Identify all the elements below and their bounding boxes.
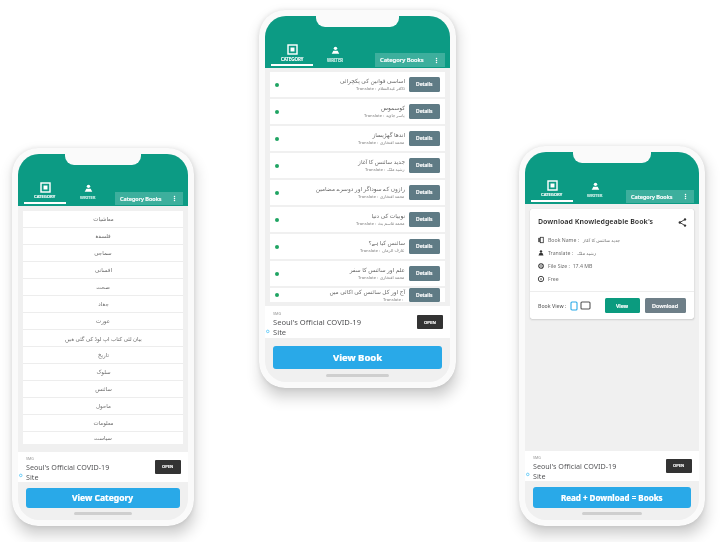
staticText: Translate : bbox=[383, 297, 405, 302]
button[interactable]: معاشیات bbox=[23, 211, 183, 227]
staticText: OPEN bbox=[673, 463, 685, 469]
button[interactable]: رازوں کے سوداگر اور دوسرے مضامین bbox=[270, 180, 445, 205]
button[interactable]: سیاست bbox=[23, 432, 183, 444]
staticText: View bbox=[616, 302, 629, 309]
button[interactable]: Landscape view bbox=[581, 302, 590, 309]
button[interactable]: Category Books bbox=[115, 192, 183, 205]
staticText: SMG bbox=[273, 311, 282, 316]
button[interactable]: WRITER bbox=[70, 184, 106, 205]
staticText: Category Books bbox=[631, 193, 673, 200]
staticText: نوبیات کی دنیا bbox=[371, 212, 405, 220]
staticText: Translate : bbox=[364, 113, 386, 119]
staticText: Translate : bbox=[548, 249, 575, 256]
button[interactable]: Download bbox=[645, 298, 686, 313]
staticText: Details bbox=[416, 270, 433, 277]
staticText: Download Knowledgeable Book's bbox=[538, 217, 678, 227]
staticText: OPEN bbox=[424, 319, 436, 325]
button[interactable]: Details bbox=[409, 104, 440, 119]
staticText: CATEGORY bbox=[281, 56, 304, 62]
staticText: عورت bbox=[96, 318, 110, 324]
staticText: محمد افتخاری bbox=[380, 194, 405, 200]
button[interactable]: نوبیات کی دنیا bbox=[270, 207, 445, 232]
button[interactable]: Details bbox=[409, 131, 440, 146]
button[interactable]: سلوک bbox=[23, 364, 183, 380]
staticText: افسانی bbox=[95, 267, 112, 273]
button[interactable]: OPEN bbox=[666, 459, 692, 473]
staticText: Details bbox=[416, 216, 433, 223]
button[interactable]: CATEGORY bbox=[531, 181, 573, 203]
staticText: WRITER bbox=[327, 57, 344, 63]
staticText: Book View : bbox=[538, 302, 567, 309]
staticText: WRITER bbox=[80, 195, 96, 201]
button[interactable]: SMG bbox=[18, 452, 188, 482]
staticText: Seoul's Official COVID-19 bbox=[273, 317, 362, 327]
staticText: محمد افتخاری bbox=[380, 140, 405, 146]
staticText: Details bbox=[416, 243, 433, 250]
button[interactable]: Details bbox=[409, 185, 440, 200]
staticText: تاریخ bbox=[98, 352, 109, 358]
button[interactable]: SMG bbox=[265, 306, 450, 338]
button[interactable]: کوسموس bbox=[270, 99, 445, 124]
button[interactable]: Details bbox=[409, 239, 440, 254]
staticText: جہاد bbox=[98, 301, 109, 307]
staticText: علم اور سائنس کا سفر bbox=[349, 266, 405, 274]
button[interactable]: CATEGORY bbox=[271, 45, 313, 67]
staticText: محمد قاسم بٹ bbox=[378, 221, 405, 227]
button[interactable]: ماحول bbox=[23, 398, 183, 414]
button[interactable]: Portrait view bbox=[571, 302, 577, 310]
button[interactable]: WRITER bbox=[577, 182, 613, 203]
button[interactable]: Details bbox=[409, 266, 440, 281]
button[interactable]: OPEN bbox=[417, 315, 443, 329]
button[interactable]: Details bbox=[409, 212, 440, 227]
staticText: Download bbox=[652, 302, 679, 309]
button[interactable]: صحت bbox=[23, 279, 183, 295]
staticText: Seoul's Official COVID-19 bbox=[26, 462, 110, 472]
button[interactable]: علم اور سائنس کا سفر bbox=[270, 261, 445, 286]
button[interactable]: Read + Download = Books bbox=[533, 487, 691, 508]
button[interactable]: جدید سائنس کا آغاز bbox=[270, 153, 445, 178]
button[interactable]: View Category bbox=[26, 488, 180, 508]
staticText: سلوک bbox=[96, 369, 111, 375]
button[interactable]: Share bbox=[678, 218, 687, 227]
button[interactable]: فلسفہ bbox=[23, 228, 183, 244]
staticText: بیان لئی کتاب اپ لوڈ کی گئی ہیں bbox=[65, 335, 142, 342]
button[interactable]: View bbox=[605, 298, 640, 313]
button[interactable]: SMG bbox=[525, 451, 699, 481]
staticText: Site bbox=[533, 471, 546, 481]
staticText: اندھا گھڑیساز bbox=[372, 131, 405, 139]
button[interactable]: جہاد bbox=[23, 296, 183, 312]
staticText: رشید ملک bbox=[577, 250, 597, 256]
button[interactable]: View Book bbox=[273, 346, 442, 369]
button[interactable]: اساسی قوانین کی پکچرائی bbox=[270, 72, 445, 97]
button[interactable]: عورت bbox=[23, 313, 183, 329]
button[interactable]: CATEGORY bbox=[24, 183, 66, 205]
staticText: ماحول bbox=[96, 403, 111, 409]
button[interactable]: Details bbox=[409, 288, 440, 302]
button[interactable]: WRITER bbox=[317, 46, 353, 67]
staticText: سماجی bbox=[94, 250, 112, 256]
button[interactable]: Details bbox=[409, 158, 440, 173]
button[interactable]: Details bbox=[409, 77, 440, 92]
staticText: Translate : bbox=[358, 275, 380, 281]
staticText: WRITER bbox=[587, 193, 603, 199]
button[interactable]: افسانی bbox=[23, 262, 183, 278]
button[interactable]: تاریخ bbox=[23, 347, 183, 363]
button[interactable]: اندھا گھڑیساز bbox=[270, 126, 445, 151]
button[interactable]: OPEN bbox=[155, 460, 181, 474]
button[interactable]: معلومات bbox=[23, 415, 183, 431]
button[interactable]: Category Books bbox=[626, 190, 694, 203]
staticText: فلسفہ bbox=[95, 233, 111, 239]
staticText: Details bbox=[416, 189, 433, 196]
staticText: Translate : bbox=[356, 221, 378, 227]
button[interactable]: بیان لئی کتاب اپ لوڈ کی گئی ہیں bbox=[23, 330, 183, 346]
button[interactable]: سائنس کیا ہے؟ bbox=[270, 234, 445, 259]
other: More options bbox=[682, 193, 689, 200]
staticText: محمد افتخاری bbox=[380, 275, 405, 281]
staticText: CATEGORY bbox=[34, 194, 56, 200]
button[interactable]: سماجی bbox=[23, 245, 183, 261]
button[interactable]: سائنس bbox=[23, 381, 183, 397]
staticText: Site bbox=[273, 327, 287, 337]
staticText: Translate : bbox=[360, 248, 382, 254]
button[interactable]: Category Books bbox=[375, 53, 445, 67]
button[interactable]: آج اور کل سائنس کی اکائی میں bbox=[270, 288, 445, 302]
